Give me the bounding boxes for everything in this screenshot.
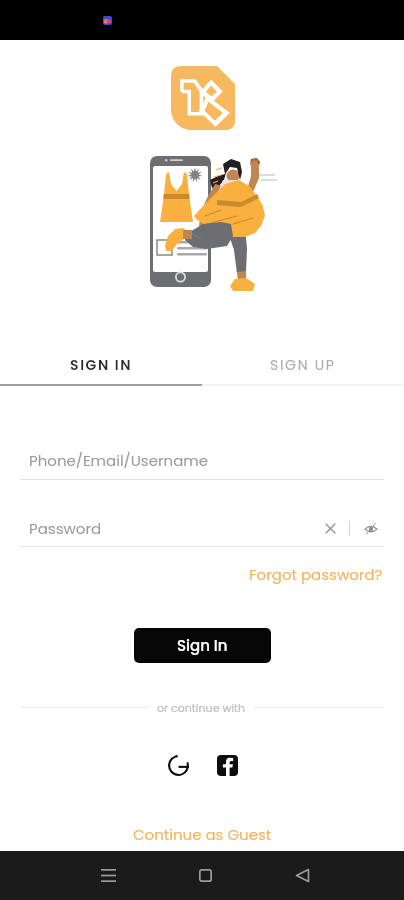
button[interactable]: Continue with Google: [164, 751, 192, 779]
staticText: Forgot password?: [249, 564, 383, 585]
button[interactable]: Home: [185, 855, 225, 895]
button[interactable]: Continue as Guest: [127, 818, 278, 851]
staticText: SIGN UP: [270, 355, 336, 375]
button[interactable]: Continue with Facebook: [213, 751, 241, 779]
button[interactable]: Show password: [359, 516, 383, 540]
button[interactable]: SIGN UP: [202, 344, 404, 386]
button[interactable]: Clear text: [318, 516, 342, 540]
staticText: or continue with: [157, 700, 246, 715]
staticText: Sign In: [177, 635, 228, 656]
staticText: Password: [29, 518, 102, 539]
button[interactable]: Sign In: [134, 628, 271, 663]
button[interactable]: Forgot password?: [245, 561, 387, 588]
button[interactable]: Back: [282, 855, 322, 895]
button[interactable]: Recent apps: [88, 855, 128, 895]
staticText: Continue as Guest: [133, 824, 272, 845]
staticText: SIGN IN: [70, 355, 133, 375]
button[interactable]: SIGN IN: [0, 344, 202, 386]
staticText: Phone/Email/Username: [29, 450, 209, 471]
